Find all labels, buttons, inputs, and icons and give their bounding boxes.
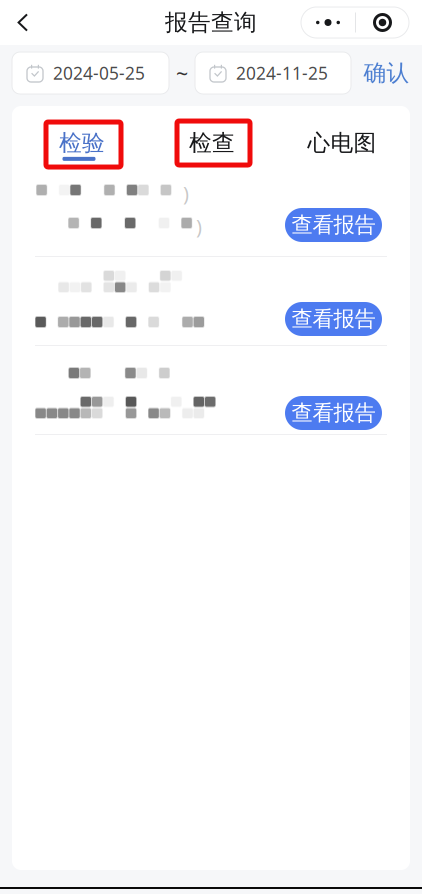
staticText: ~ — [176, 59, 188, 87]
button[interactable]: 2024-05-25 — [12, 52, 169, 94]
staticText: 检查 — [189, 129, 235, 157]
button[interactable]: 查看报告 — [285, 396, 382, 430]
button[interactable]: 返回 — [0, 0, 46, 45]
button[interactable]: 更多 — [301, 7, 409, 38]
staticText: 查看报告 — [291, 212, 375, 238]
staticText: 2024-11-25 — [236, 61, 328, 84]
staticText: 查看报告 — [291, 306, 375, 332]
button[interactable]: 2024-11-25 — [195, 52, 351, 94]
staticText: 查看报告 — [291, 400, 375, 426]
button[interactable]: 查看报告 — [285, 302, 382, 336]
button[interactable]: 检验 — [59, 106, 105, 170]
staticText: ) — [196, 213, 202, 240]
staticText: 报告查询 — [165, 9, 257, 36]
staticText: ) — [183, 180, 189, 207]
button[interactable]: 查看报告 — [285, 208, 382, 242]
staticText: 确认 — [363, 59, 409, 87]
staticText: 心电图 — [307, 129, 376, 157]
button[interactable]: 心电图 — [307, 106, 376, 170]
staticText: 检验 — [59, 129, 105, 157]
staticText: 2024-05-25 — [53, 61, 145, 84]
button[interactable]: 检查 — [189, 106, 235, 170]
button[interactable]: 确认 — [351, 52, 422, 94]
